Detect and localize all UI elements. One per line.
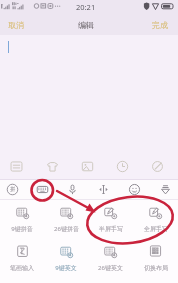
button[interactable]: 完成	[146, 16, 178, 34]
button[interactable]: Hide keyboard	[157, 181, 174, 198]
staticText: 26键英文	[98, 264, 123, 272]
button[interactable]: Recent	[111, 155, 133, 177]
button[interactable]: Input language	[4, 181, 21, 198]
button[interactable]: Magic	[146, 155, 168, 177]
button[interactable]: 9键英文	[44, 239, 88, 278]
button[interactable]: Move cursor	[95, 181, 112, 198]
staticText: 20:21	[76, 2, 96, 12]
button[interactable]: Text	[5, 155, 27, 177]
staticText: 26键拼音	[54, 225, 79, 233]
button[interactable]: 全屏手写	[133, 200, 178, 239]
button[interactable]: Emoji	[126, 181, 143, 198]
staticText: 笔画输入	[10, 264, 34, 272]
staticText: 半屏手写	[99, 225, 123, 233]
button[interactable]: 取消	[0, 16, 30, 34]
button[interactable]: 半屏手写	[88, 200, 133, 239]
staticText: 切换布局	[144, 264, 168, 272]
button[interactable]: 切换布局	[133, 239, 178, 278]
button[interactable]: Keyboard	[34, 181, 51, 198]
button[interactable]: 9键拼音	[0, 200, 44, 239]
staticText: 9键拼音	[11, 225, 33, 233]
staticText: 取消	[8, 20, 24, 30]
button[interactable]: Voice	[64, 181, 81, 198]
button[interactable]: 26键英文	[88, 239, 133, 278]
staticText: 编辑	[78, 20, 94, 30]
button[interactable]: 笔画输入	[0, 239, 44, 278]
button[interactable]: Sticker	[41, 155, 63, 177]
staticText: 全屏手写	[144, 225, 168, 233]
button[interactable]: Image	[76, 155, 98, 177]
staticText: 拼	[10, 186, 16, 193]
staticText: 9键英文	[55, 264, 77, 272]
button[interactable]: 26键拼音	[44, 200, 88, 239]
staticText: 完成	[152, 20, 168, 30]
